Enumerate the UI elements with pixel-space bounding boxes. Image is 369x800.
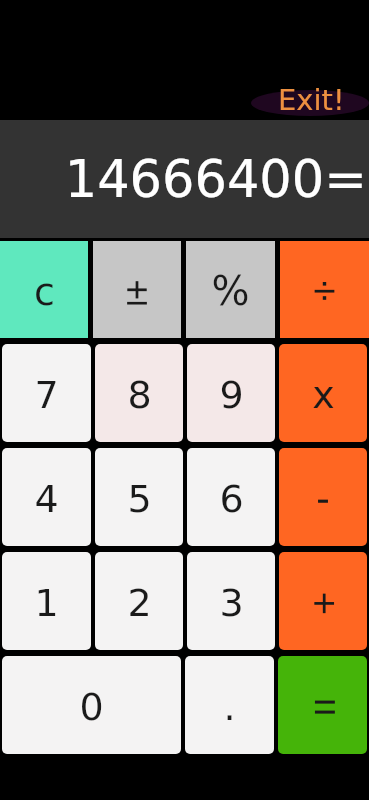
staticText: 5 bbox=[127, 477, 152, 521]
staticText: Exit! bbox=[278, 83, 345, 117]
staticText: x bbox=[312, 373, 335, 417]
staticText: % bbox=[211, 268, 250, 315]
button[interactable]: Exit bbox=[249, 86, 369, 120]
staticText: 8 bbox=[127, 373, 152, 417]
button[interactable]: Minus bbox=[279, 448, 367, 546]
staticText: 2 bbox=[127, 581, 152, 625]
button[interactable]: 4 bbox=[2, 448, 91, 546]
button[interactable]: 5 bbox=[95, 448, 183, 546]
staticText: . bbox=[223, 685, 236, 729]
staticText: 1 bbox=[34, 581, 59, 625]
button[interactable]: 9 bbox=[187, 344, 275, 442]
button[interactable]: 7 bbox=[2, 344, 91, 442]
button[interactable]: 6 bbox=[187, 448, 275, 546]
button[interactable]: 0 bbox=[2, 656, 181, 754]
staticText: 3 bbox=[219, 581, 244, 625]
button[interactable]: Plus bbox=[279, 552, 367, 650]
button[interactable]: Multiply bbox=[279, 344, 367, 442]
button[interactable]: 8 bbox=[95, 344, 183, 442]
button[interactable]: Plus minus bbox=[93, 241, 181, 338]
staticText: 0 bbox=[79, 685, 104, 729]
staticText: 14666400= bbox=[64, 150, 367, 209]
button[interactable]: Divide bbox=[280, 241, 369, 338]
staticText: 7 bbox=[34, 373, 59, 417]
staticText: 4 bbox=[34, 477, 59, 521]
button[interactable]: c bbox=[0, 241, 88, 338]
button[interactable]: Decimal point bbox=[185, 656, 274, 754]
staticText: c bbox=[34, 270, 55, 314]
button[interactable]: 1 bbox=[2, 552, 91, 650]
button[interactable]: Equals bbox=[278, 656, 367, 754]
button[interactable]: Percent bbox=[186, 241, 275, 338]
button[interactable]: 3 bbox=[187, 552, 275, 650]
staticText: 9 bbox=[219, 373, 244, 417]
staticText: 6 bbox=[219, 477, 244, 521]
button[interactable]: 2 bbox=[95, 552, 183, 650]
